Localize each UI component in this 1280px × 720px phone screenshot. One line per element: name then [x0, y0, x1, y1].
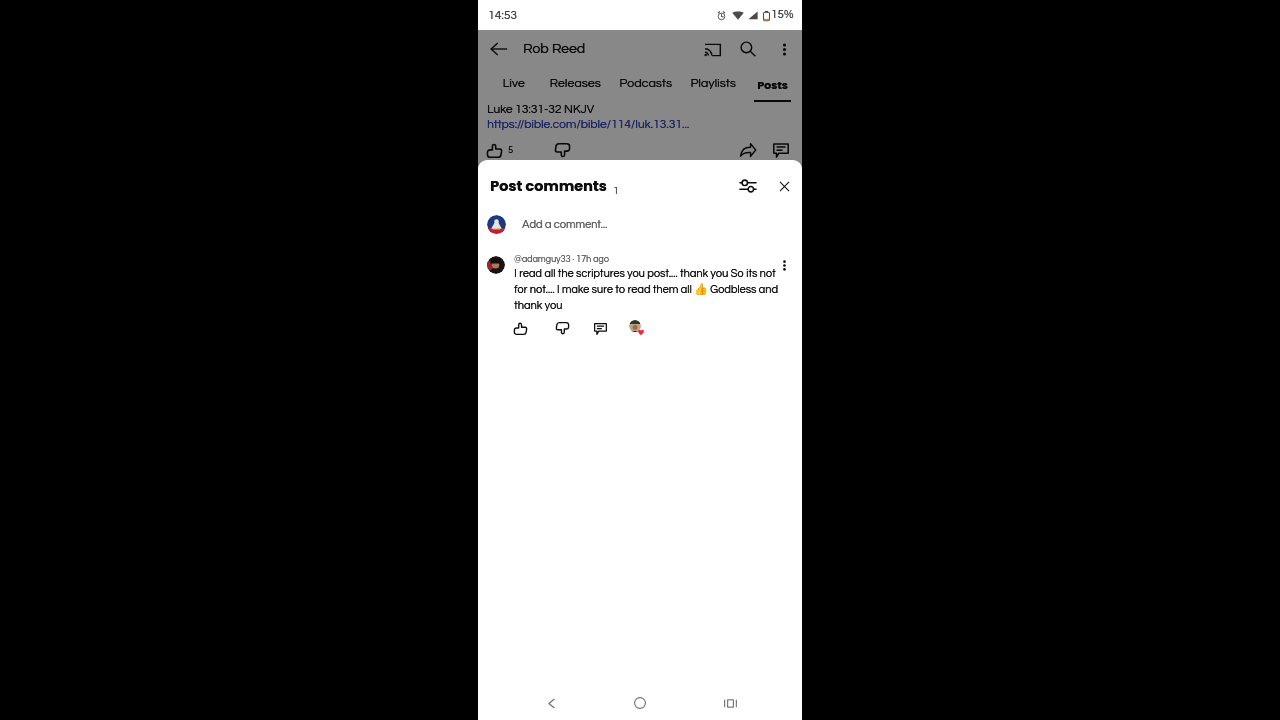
- button[interactable]: Playlists: [684, 68, 742, 102]
- button[interactable]: Cast: [697, 34, 727, 64]
- button[interactable]: More options: [773, 38, 795, 60]
- staticText: Playlists: [690, 77, 736, 90]
- staticText: @adamguy33 · 17h ago: [514, 255, 609, 264]
- button[interactable]: Live: [484, 68, 542, 102]
- staticText: Posts: [757, 77, 788, 92]
- staticText: Luke 13:31-32 NKJV: [487, 103, 595, 115]
- staticText: Live: [502, 77, 525, 90]
- button[interactable]: Sort comments: [733, 171, 763, 201]
- staticText: Releases: [549, 77, 601, 90]
- button[interactable]: Creator heart: [627, 318, 647, 338]
- button[interactable]: Recent apps: [718, 691, 742, 715]
- button[interactable]: Podcasts: [616, 68, 674, 102]
- button[interactable]: Releases: [546, 68, 604, 102]
- staticText: 5: [508, 146, 513, 155]
- button[interactable]: Back: [487, 37, 511, 61]
- button[interactable]: Dislike: [552, 318, 572, 338]
- button[interactable]: Like: [510, 318, 530, 338]
- staticText: Post comments: [490, 176, 607, 196]
- staticText: Rob Reed: [523, 42, 585, 56]
- button[interactable]: Home: [628, 691, 652, 715]
- button[interactable]: Search: [733, 34, 763, 64]
- button[interactable]: Back: [539, 691, 563, 715]
- button[interactable]: More actions: [774, 255, 794, 275]
- staticText: 15%: [771, 9, 794, 21]
- staticText: Add a comment...: [522, 219, 608, 230]
- button[interactable]: Add a comment...: [478, 206, 802, 242]
- staticText: 14:53: [488, 9, 517, 21]
- button[interactable]: Posts: [743, 68, 801, 102]
- staticText: 1: [613, 185, 619, 196]
- staticText: https://bible.com/bible/114/luk.13.31...: [487, 118, 690, 130]
- staticText: Podcasts: [619, 77, 672, 90]
- button[interactable]: Reply: [590, 318, 610, 338]
- button[interactable]: Close: [769, 171, 799, 201]
- staticText: I read all the scriptures you post.... t…: [514, 268, 782, 311]
